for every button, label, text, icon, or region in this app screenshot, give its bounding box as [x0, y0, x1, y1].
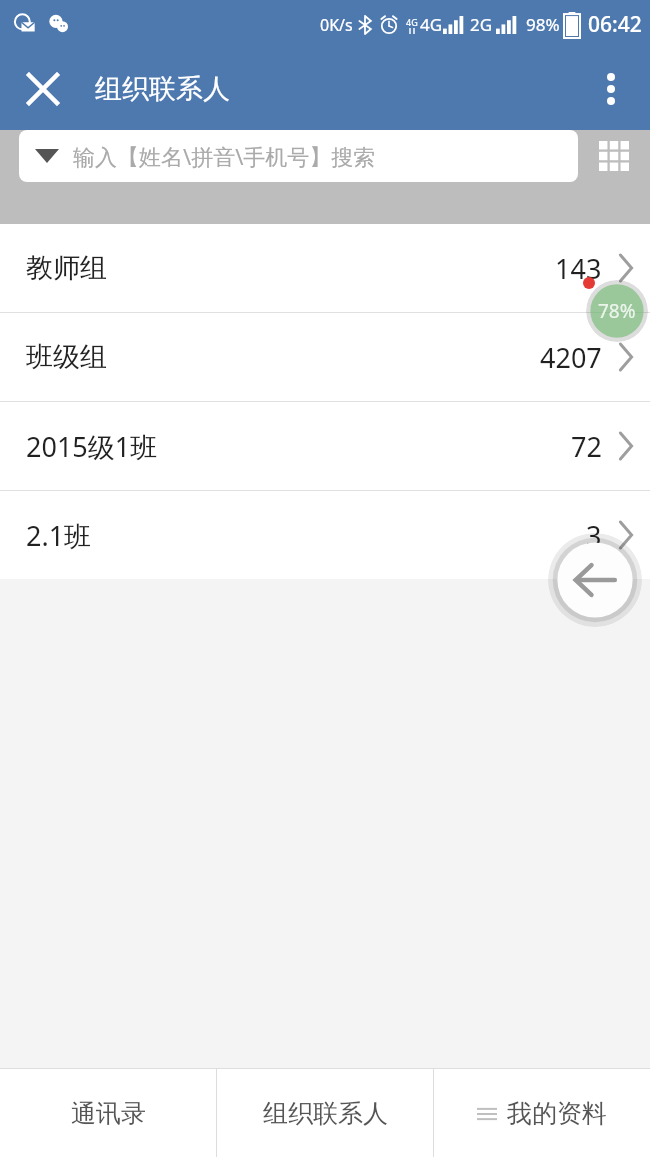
- button[interactable]: Grid view: [588, 130, 640, 182]
- staticText: 4207: [540, 339, 602, 376]
- staticText: 教师组: [26, 251, 107, 285]
- staticText: 4G: [420, 13, 443, 36]
- button[interactable]: 教师组: [0, 224, 650, 312]
- button[interactable]: Memory usage 78 percent: [586, 280, 648, 342]
- staticText: 通讯录: [71, 1098, 146, 1129]
- button[interactable]: 班级组: [0, 313, 650, 401]
- button[interactable]: 通讯录: [0, 1069, 216, 1157]
- staticText: 组织联系人: [263, 1098, 388, 1129]
- button[interactable]: 我的资料: [434, 1069, 650, 1157]
- staticText: 2.1班: [26, 517, 92, 554]
- staticText: 2015级1班: [26, 428, 158, 465]
- button[interactable]: More options: [582, 60, 640, 118]
- button[interactable]: 组织联系人: [217, 1069, 433, 1157]
- staticText: 组织联系人: [95, 72, 230, 106]
- staticText: 72: [571, 428, 602, 465]
- button[interactable]: 2.1班: [0, 491, 650, 579]
- button[interactable]: 输入【姓名\拼音\手机号】搜索: [19, 130, 578, 182]
- staticText: 2G: [470, 13, 493, 36]
- button[interactable]: Back: [548, 533, 642, 627]
- staticText: 班级组: [26, 340, 107, 374]
- staticText: 我的资料: [507, 1098, 607, 1129]
- button[interactable]: Close: [14, 60, 72, 118]
- staticText: 143: [555, 250, 602, 287]
- staticText: 98%: [526, 13, 560, 36]
- staticText: 0K/s: [320, 14, 353, 36]
- staticText: 输入【姓名\拼音\手机号】搜索: [73, 141, 376, 171]
- button[interactable]: 2015级1班: [0, 402, 650, 490]
- staticText: 4G: [406, 16, 418, 28]
- staticText: 78%: [598, 298, 636, 324]
- staticText: 06:42: [588, 10, 642, 39]
- staticText: 3: [586, 517, 602, 554]
